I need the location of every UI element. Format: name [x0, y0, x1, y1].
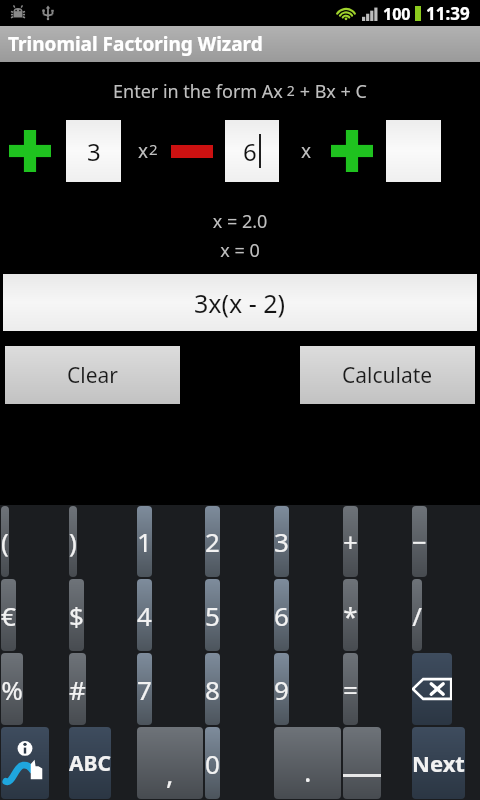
staticText: Calculate — [342, 361, 433, 390]
button[interactable]: Sign A plus — [8, 129, 52, 173]
button[interactable]: ( — [1, 506, 9, 577]
button[interactable]: * — [343, 579, 358, 651]
button[interactable]: # — [69, 653, 86, 725]
button[interactable]: − — [412, 506, 427, 577]
button[interactable]: ) — [69, 506, 77, 577]
staticText: 3x(x - 2) — [194, 286, 286, 320]
button[interactable]: Next — [412, 727, 465, 799]
staticText: € — [1, 598, 16, 633]
staticText: x = 0 — [0, 238, 480, 263]
button[interactable]: Comma — [137, 727, 203, 799]
staticText: − — [412, 524, 427, 559]
staticText: x — [301, 138, 312, 164]
button[interactable]: 7 — [137, 653, 152, 725]
button[interactable]: 3 — [66, 120, 121, 182]
staticText: Trinomial Factoring Wizard — [8, 31, 263, 57]
button[interactable]: Sign B minus — [169, 129, 215, 173]
staticText: 100 — [383, 3, 411, 25]
button[interactable]: 1 — [137, 506, 152, 577]
staticText: 3 — [87, 135, 101, 168]
staticText: Enter in the form Ax — [113, 79, 283, 104]
button[interactable]: Sign C plus — [330, 129, 374, 173]
staticText: 5 — [205, 598, 220, 633]
button[interactable]: 5 — [205, 579, 220, 651]
staticText: 2 — [149, 139, 158, 159]
staticText: 7 — [137, 672, 152, 707]
staticText: * — [343, 598, 358, 633]
button[interactable]: 9 — [274, 653, 289, 725]
staticText: x — [138, 138, 149, 164]
staticText: + — [343, 524, 358, 559]
button[interactable]: Swipe input help — [1, 727, 49, 799]
button[interactable]: Period — [274, 727, 341, 799]
button[interactable]: ABC — [69, 727, 111, 799]
button[interactable]: Space — [343, 727, 381, 799]
button[interactable]: 6 — [274, 579, 289, 651]
button[interactable]: / — [412, 579, 422, 651]
button[interactable]: 3x(x - 2) — [3, 274, 477, 331]
staticText: $ — [69, 598, 84, 633]
staticText: 6 — [274, 598, 289, 633]
staticText: # — [69, 672, 86, 707]
staticText: Next — [412, 748, 465, 778]
button[interactable]: % — [1, 653, 23, 725]
button[interactable]: Backspace — [412, 653, 452, 725]
staticText: 8 — [205, 672, 220, 707]
staticText: , — [166, 754, 174, 792]
staticText: ( — [1, 524, 9, 559]
staticText: x = 2.0 — [0, 209, 480, 234]
button[interactable]: 6 — [225, 120, 279, 182]
button[interactable]: = — [343, 653, 358, 725]
staticText: 0 — [205, 746, 220, 781]
staticText: 9 — [274, 672, 289, 707]
button[interactable]: Clear — [5, 346, 180, 404]
staticText: 2 — [283, 81, 295, 100]
staticText: 11:39 — [426, 2, 470, 25]
button[interactable]: Calculate — [300, 346, 475, 404]
button[interactable]: 8 — [205, 653, 220, 725]
staticText: 1 — [137, 524, 152, 559]
staticText: / — [412, 598, 422, 633]
button[interactable]: 2 — [205, 506, 220, 577]
button[interactable]: + — [343, 506, 358, 577]
staticText: Clear — [67, 361, 118, 390]
button[interactable]: $ — [69, 579, 84, 651]
button[interactable]: € — [1, 579, 16, 651]
button[interactable]: 0 — [205, 727, 220, 799]
staticText: + Bx + C — [295, 79, 367, 104]
button[interactable]: 3 — [274, 506, 289, 577]
staticText: ) — [69, 524, 77, 559]
staticText: . — [304, 752, 312, 790]
staticText: 2 — [205, 524, 220, 559]
staticText: 3 — [274, 524, 289, 559]
staticText: ABC — [69, 749, 111, 778]
staticText: = — [343, 672, 358, 707]
staticText: 4 — [137, 598, 152, 633]
staticText: 6 — [243, 135, 257, 168]
button[interactable]: 4 — [137, 579, 152, 651]
button[interactable] — [386, 120, 441, 182]
staticText: % — [1, 672, 23, 707]
